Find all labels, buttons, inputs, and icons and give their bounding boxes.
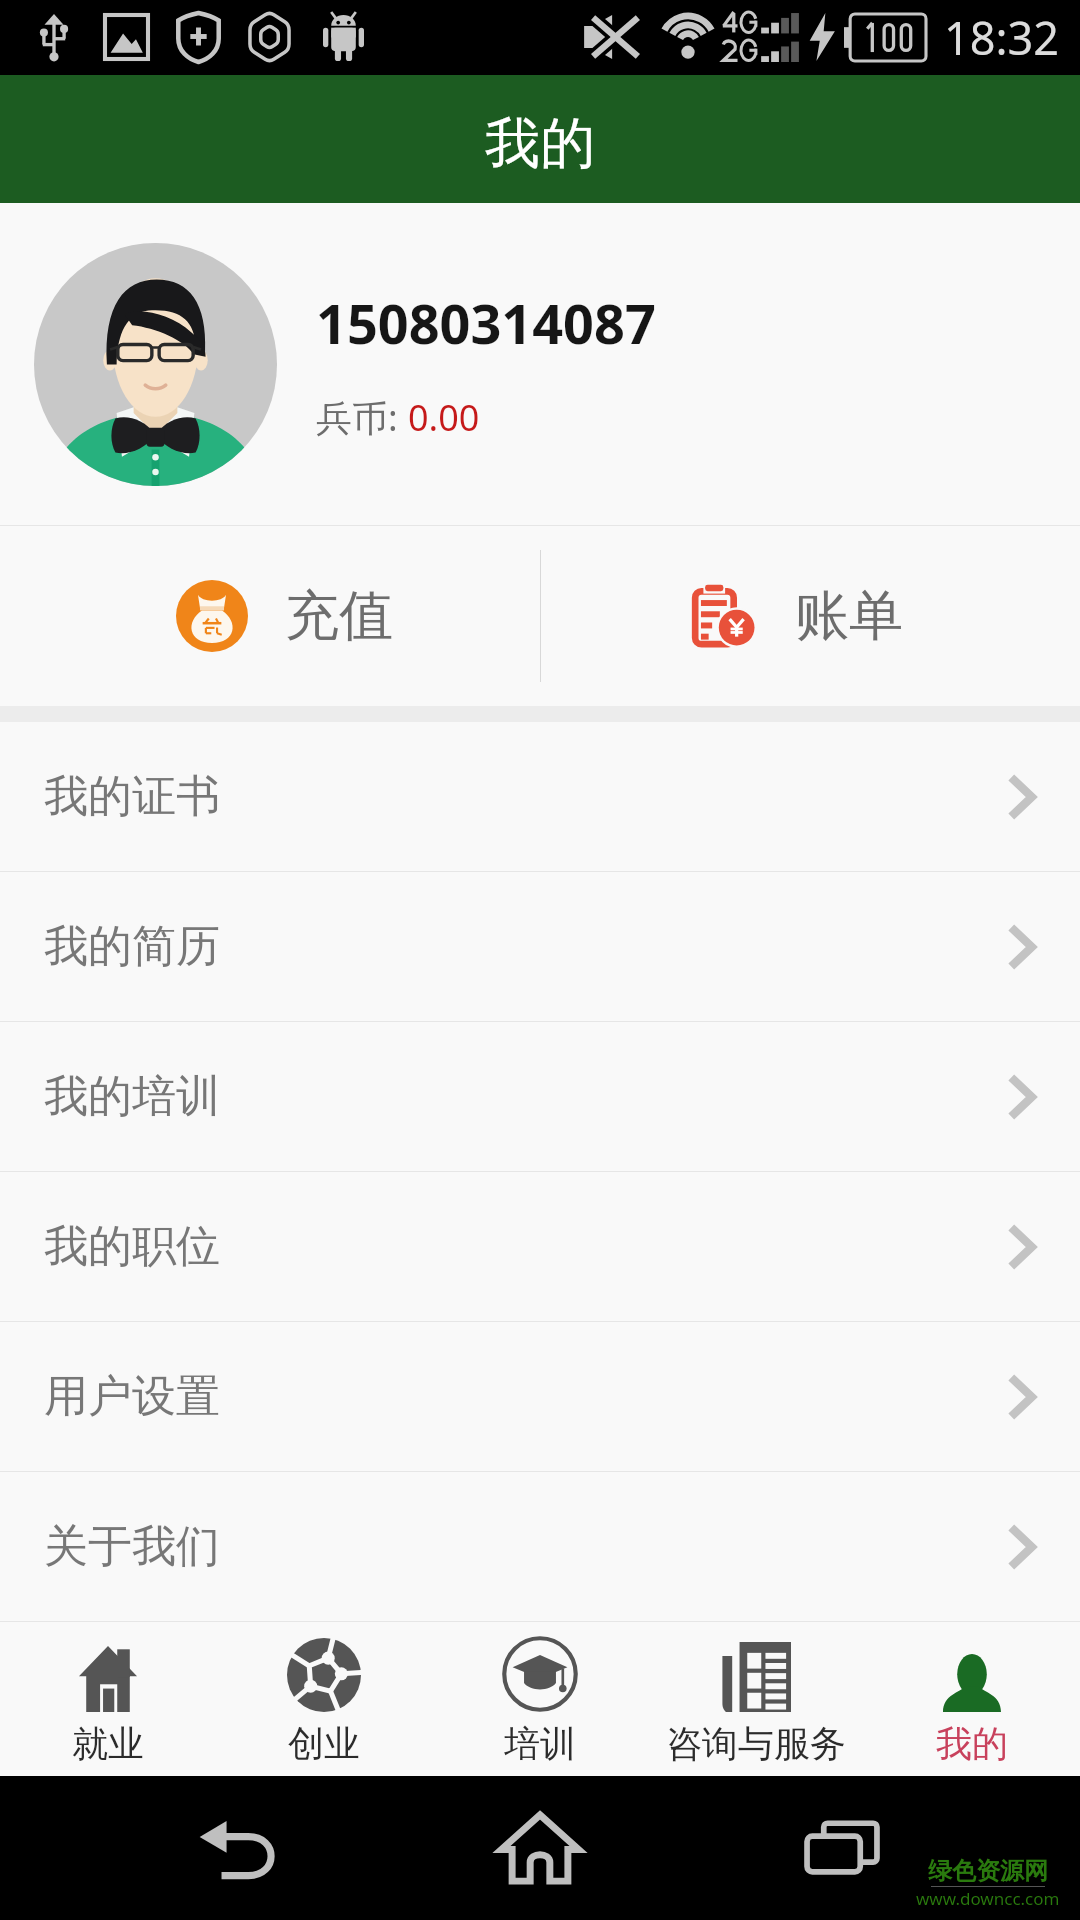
staticText: 培训	[504, 1721, 576, 1766]
button[interactable]: 关于我们	[0, 1472, 1080, 1621]
staticText: 咨询与服务	[666, 1721, 846, 1766]
staticText: 账单	[795, 582, 903, 650]
button[interactable]: 充值	[0, 526, 540, 706]
staticText: 我的	[485, 109, 595, 178]
button[interactable]: 我的证书	[0, 722, 1080, 871]
staticText: 我的简历	[44, 919, 220, 974]
staticText: 就业	[72, 1721, 144, 1766]
staticText: 我的	[936, 1721, 1008, 1766]
button[interactable]: 咨询与服务	[648, 1626, 864, 1776]
button[interactable]: 我的培训	[0, 1022, 1080, 1171]
staticText: 18:32	[944, 7, 1060, 68]
staticText: 兵币:	[316, 393, 408, 442]
button[interactable]: 账单	[540, 526, 1080, 706]
button[interactable]: 就业	[0, 1626, 216, 1776]
staticText: 充值	[285, 582, 393, 650]
button[interactable]: 创业	[216, 1626, 432, 1776]
button[interactable]: Back	[198, 1818, 282, 1880]
button[interactable]: Recents	[804, 1820, 880, 1874]
staticText: 我的证书	[44, 769, 220, 824]
button[interactable]: 我的简历	[0, 872, 1080, 1021]
button[interactable]: 我的职位	[0, 1172, 1080, 1321]
staticText: 我的职位	[44, 1219, 220, 1274]
button[interactable]: Home	[499, 1812, 581, 1884]
staticText: 0.00	[408, 393, 480, 442]
button[interactable]: 我的	[864, 1626, 1080, 1776]
staticText: www.downcc.com	[916, 1887, 1060, 1910]
staticText: 创业	[288, 1721, 360, 1766]
staticText: 我的培训	[44, 1069, 220, 1124]
staticText: 关于我们	[44, 1519, 220, 1574]
button[interactable]: 用户设置	[0, 1322, 1080, 1471]
staticText: 15080314087	[316, 286, 656, 360]
staticText: 绿色资源网	[928, 1856, 1048, 1886]
staticText: 用户设置	[44, 1369, 220, 1424]
button[interactable]: 培训	[432, 1626, 648, 1776]
